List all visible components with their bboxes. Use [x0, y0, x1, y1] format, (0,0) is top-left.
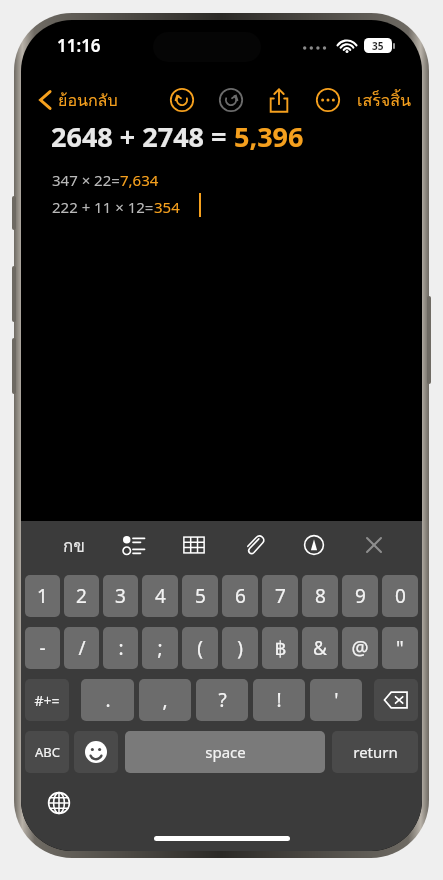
staticText: , — [162, 687, 168, 713]
button[interactable]: , — [139, 679, 191, 721]
button[interactable]: 1 — [25, 575, 60, 617]
button[interactable]: Emoji — [74, 731, 118, 773]
button[interactable]: ( — [182, 627, 218, 669]
button[interactable]: เสร็จสิ้น — [351, 83, 417, 117]
button[interactable]: ? — [196, 679, 248, 721]
button[interactable]: 6 — [222, 575, 258, 617]
staticText: 9 — [355, 583, 366, 609]
staticText: ฿ — [274, 637, 287, 659]
button[interactable]: Close keyboard — [344, 521, 404, 569]
staticText: & — [313, 635, 327, 661]
button[interactable]: . — [81, 679, 134, 721]
staticText: 3 — [115, 583, 126, 609]
staticText: 4 — [155, 583, 166, 609]
button[interactable]: 4 — [142, 575, 178, 617]
button[interactable]: Thai keyboard — [43, 521, 104, 569]
staticText: ( — [197, 635, 203, 661]
staticText: " — [396, 635, 404, 661]
button[interactable]: ! — [253, 679, 305, 721]
button[interactable]: Redo — [214, 83, 248, 117]
button[interactable]: Markup — [284, 521, 344, 569]
button[interactable]: 0 — [382, 575, 418, 617]
button[interactable]: & — [302, 627, 338, 669]
button[interactable]: Table — [164, 521, 224, 569]
button[interactable]: 2 — [64, 575, 99, 617]
button[interactable]: : — [103, 627, 138, 669]
staticText: ' — [334, 687, 339, 713]
staticText: ? — [218, 687, 227, 713]
button[interactable]: 9 — [342, 575, 378, 617]
staticText: ! — [276, 687, 282, 713]
button[interactable]: Share — [262, 83, 296, 117]
staticText: กข — [63, 532, 85, 559]
button[interactable]: - — [25, 627, 60, 669]
button[interactable]: return — [332, 731, 418, 773]
staticText: 354 — [154, 197, 180, 217]
button[interactable]: 3 — [103, 575, 138, 617]
button[interactable]: ฿ — [262, 627, 298, 669]
staticText: 6 — [235, 583, 246, 609]
staticText: 2648 + 2748 = — [51, 118, 234, 155]
button[interactable]: ) — [222, 627, 258, 669]
button[interactable]: Checklist — [104, 521, 164, 569]
staticText: เสร็จสิ้น — [357, 88, 411, 113]
staticText: ย้อนกลับ — [58, 88, 118, 113]
staticText: 347 × 22= — [52, 170, 120, 190]
staticText: 1 — [37, 583, 48, 609]
staticText: : — [118, 635, 124, 661]
button[interactable]: @ — [342, 627, 378, 669]
button[interactable]: 5 — [182, 575, 218, 617]
staticText: . — [105, 687, 111, 713]
button[interactable]: ย้อนกลับ — [35, 83, 122, 117]
button[interactable]: 7 — [262, 575, 298, 617]
button[interactable]: More options — [311, 83, 345, 117]
button[interactable]: ' — [310, 679, 362, 721]
staticText: #+= — [34, 691, 60, 710]
button[interactable]: ; — [142, 627, 178, 669]
button[interactable]: Attach — [224, 521, 284, 569]
staticText: space — [205, 742, 246, 762]
button[interactable]: Delete — [374, 679, 418, 721]
button[interactable]: 8 — [302, 575, 338, 617]
staticText: 0 — [395, 583, 406, 609]
staticText: - — [39, 635, 46, 661]
button[interactable]: Undo — [165, 83, 199, 117]
staticText: 222 + 11 × 12= — [52, 197, 154, 217]
button[interactable]: / — [64, 627, 99, 669]
staticText: @ — [351, 635, 369, 661]
staticText: 5 — [195, 583, 206, 609]
staticText: / — [78, 635, 86, 661]
button[interactable]: ABC — [25, 731, 69, 773]
button[interactable]: space — [125, 731, 325, 773]
button[interactable]: " — [382, 627, 418, 669]
button[interactable]: Switch keyboard — [41, 785, 77, 821]
staticText: ) — [237, 635, 243, 661]
staticText: 8 — [315, 583, 326, 609]
staticText: 11:16 — [57, 34, 101, 57]
staticText: 35 — [372, 39, 384, 53]
staticText: 7,634 — [120, 170, 159, 190]
staticText: return — [353, 742, 398, 762]
button[interactable]: #+= — [25, 679, 69, 721]
staticText: ; — [157, 635, 163, 661]
staticText: 7 — [275, 583, 286, 609]
staticText: 2 — [76, 583, 87, 609]
staticText: 5,396 — [234, 118, 304, 155]
staticText: ABC — [35, 743, 60, 761]
